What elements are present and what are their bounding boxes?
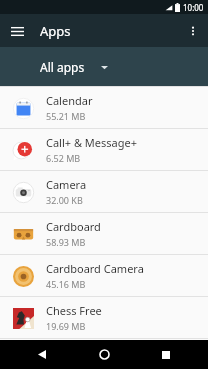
button[interactable]: Home	[84, 340, 124, 369]
button[interactable]: More options	[182, 20, 204, 42]
staticText: Cardboard	[46, 219, 101, 234]
button[interactable]: Back	[22, 340, 62, 369]
staticText: 10:00	[183, 2, 204, 13]
button[interactable]: Chess Free	[0, 297, 208, 338]
button[interactable]: Cardboard Camera	[0, 255, 208, 296]
staticText: 55.21 MB	[46, 110, 86, 122]
staticText: Apps	[40, 22, 71, 40]
staticText: All apps	[40, 59, 85, 75]
staticText: Cardboard Camera	[46, 261, 144, 276]
button[interactable]: Calendar	[0, 87, 208, 128]
button[interactable]: Recent apps	[146, 340, 186, 369]
staticText: 19.69 MB	[46, 320, 86, 332]
button[interactable]: All apps	[36, 53, 112, 81]
staticText: Chess Free	[46, 303, 102, 318]
staticText: 58.93 MB	[46, 236, 86, 248]
staticText: 45.16 MB	[46, 278, 86, 290]
staticText: Call+ & Message+	[46, 135, 138, 150]
button[interactable]: Cardboard	[0, 213, 208, 254]
staticText: Camera	[46, 177, 87, 192]
staticText: Calendar	[46, 93, 93, 108]
staticText: 6.52 MB	[46, 152, 81, 164]
button[interactable]: Call+ & Message+	[0, 129, 208, 170]
button[interactable]: Camera	[0, 171, 208, 212]
staticText: 32.00 KB	[46, 194, 83, 206]
button[interactable]: Navigation menu	[5, 19, 29, 43]
